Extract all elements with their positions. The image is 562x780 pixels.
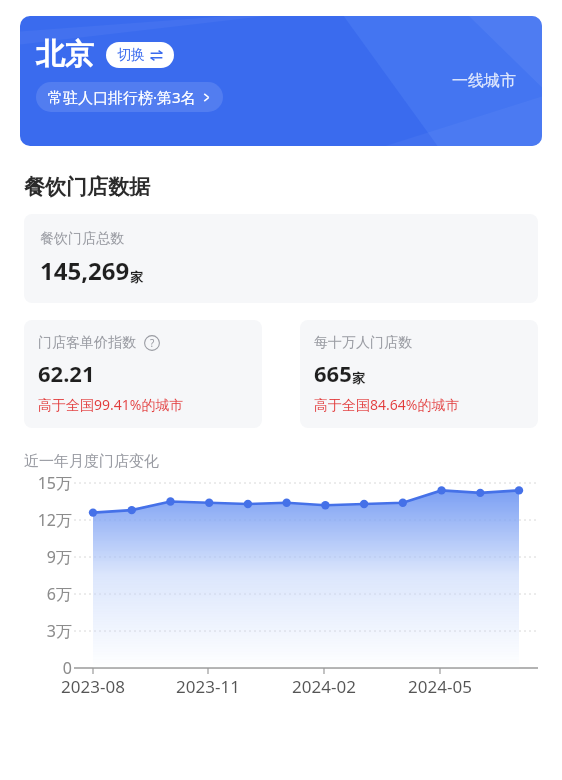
staticText: ? [150,336,155,350]
staticText: 15万 [37,472,72,494]
staticText: 家 [352,370,365,386]
staticText: 2024-05 [408,675,472,698]
button[interactable]: 切换 [106,42,174,68]
staticText: 每十万人门店数 [314,334,412,352]
staticText: 145,269 [40,254,130,287]
staticText: 高于全国84.64%的城市 [314,395,460,414]
button[interactable]: 餐饮门店总数 [24,214,538,303]
staticText: 高于全国99.41%的城市 [38,395,184,414]
button[interactable]: 北京 [20,16,542,146]
staticText: 3万 [46,620,72,642]
staticText: 2023-08 [61,675,125,698]
staticText: 6万 [46,583,72,605]
button[interactable]: 每十万人门店数 [300,320,538,428]
staticText: 9万 [46,546,72,568]
staticText: 一线城市 [452,71,516,91]
staticText: 12万 [37,509,72,531]
staticText: 餐饮门店总数 [40,230,124,248]
staticText: 2023-11 [176,675,240,698]
staticText: 2024-02 [292,675,356,698]
staticText: 常驻人口排行榜·第3名 [48,87,196,107]
button[interactable]: 帮助说明 [144,335,160,351]
staticText: 665 [314,358,352,388]
staticText: 餐饮门店数据 [24,174,150,200]
staticText: 门店客单价指数 [38,334,136,352]
staticText: 近一年月度门店变化 [24,452,159,471]
staticText: 北京 [36,36,94,73]
staticText: 0 [62,657,72,679]
staticText: 家 [130,269,143,285]
button[interactable]: 门店客单价指数 [24,320,262,428]
staticText: 62.21 [38,358,95,388]
button[interactable]: 常驻人口排行榜·第3名 [36,82,223,112]
staticText: 切换 [117,46,145,64]
